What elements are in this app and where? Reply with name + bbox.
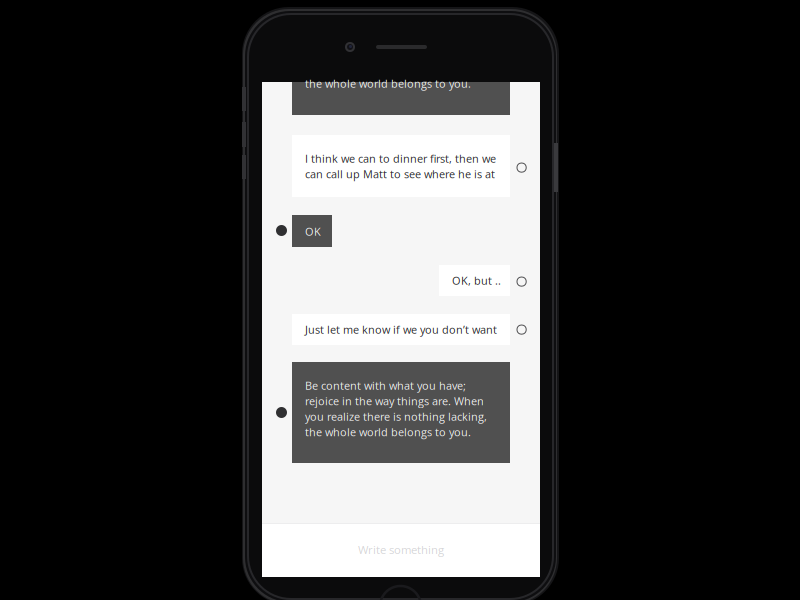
button[interactable]: OK, but .. [439,265,510,296]
button[interactable]: the whole world belongs to you. [292,82,510,115]
button[interactable]: Just let me know if we you don’t want [292,314,510,345]
staticText: you realize there is nothing lacking, [305,409,487,424]
button[interactable]: I think we can to dinner first, then we [292,135,510,197]
staticText: the whole world belongs to you. [305,424,471,439]
staticText: rejoice in the way things are. When [305,393,484,408]
staticText: can call up Matt to see where he is at [305,166,495,181]
staticText: Be content with what you have; [305,378,466,393]
staticText: Write something [358,542,444,557]
staticText: the whole world belongs to you. [305,76,471,91]
button[interactable]: Be content with what you have; [292,362,510,463]
button[interactable]: OK [292,215,332,247]
staticText: OK, but .. [452,273,501,288]
staticText: OK [305,224,321,239]
staticText: I think we can to dinner first, then we [305,151,496,166]
button[interactable]: Write something [262,523,540,577]
staticText: Just let me know if we you don’t want [305,322,497,337]
